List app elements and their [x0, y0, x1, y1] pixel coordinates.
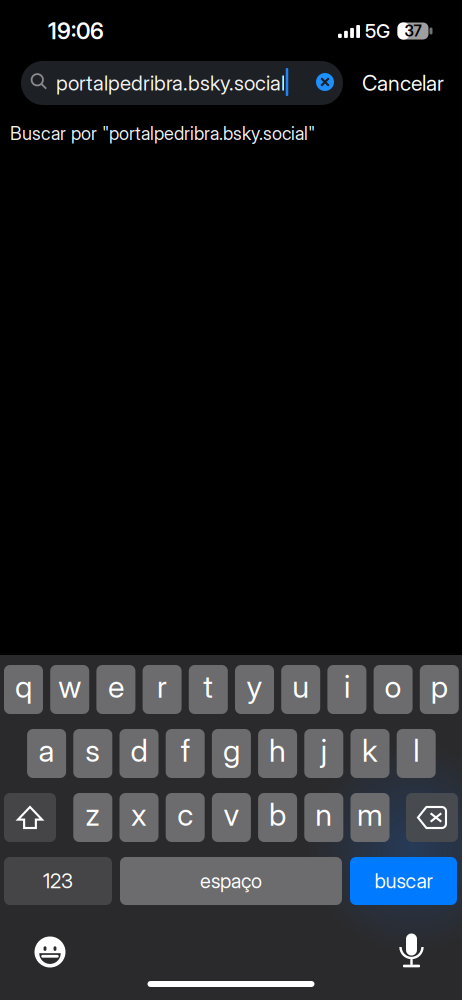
- staticText: d: [130, 732, 147, 769]
- staticText: v: [223, 796, 239, 833]
- staticText: Buscar por "portalpedribra.bsky.social": [10, 122, 315, 144]
- button[interactable]: q: [4, 665, 43, 714]
- staticText: i: [344, 668, 350, 705]
- button[interactable]: w: [50, 665, 89, 714]
- staticText: 37: [404, 22, 421, 40]
- button[interactable]: 123: [4, 857, 112, 905]
- button[interactable]: Clear text: [308, 65, 342, 99]
- button[interactable]: u: [281, 665, 320, 714]
- button[interactable]: k: [350, 729, 389, 778]
- staticText: 19:06: [48, 17, 104, 45]
- button[interactable]: Dictation: [389, 929, 433, 973]
- button[interactable]: Shift: [4, 793, 56, 842]
- button[interactable]: s: [73, 729, 112, 778]
- staticText: x: [131, 796, 147, 833]
- button[interactable]: a: [27, 729, 66, 778]
- staticText: Cancelar: [362, 70, 444, 96]
- button[interactable]: r: [143, 665, 182, 714]
- button[interactable]: b: [258, 793, 297, 842]
- staticText: z: [85, 796, 100, 833]
- staticText: u: [292, 668, 309, 705]
- staticText: portalpedribra.bsky.social: [56, 70, 285, 95]
- button[interactable]: d: [119, 729, 158, 778]
- button[interactable]: Buscar por "portalpedribra.bsky.social": [0, 115, 462, 151]
- button[interactable]: e: [96, 665, 135, 714]
- staticText: o: [385, 668, 402, 705]
- button[interactable]: Cancelar: [351, 61, 455, 105]
- staticText: a: [39, 732, 55, 769]
- staticText: buscar: [374, 869, 432, 893]
- button[interactable]: i: [327, 665, 366, 714]
- staticText: m: [357, 796, 383, 833]
- staticText: b: [269, 796, 286, 833]
- staticText: e: [108, 668, 124, 705]
- staticText: l: [413, 732, 419, 769]
- button[interactable]: y: [235, 665, 274, 714]
- staticText: f: [181, 732, 190, 769]
- staticText: j: [321, 732, 327, 769]
- staticText: c: [177, 796, 193, 833]
- button[interactable]: h: [258, 729, 297, 778]
- staticText: p: [431, 668, 448, 705]
- button[interactable]: l: [397, 729, 436, 778]
- staticText: k: [362, 732, 378, 769]
- button[interactable]: Delete: [406, 793, 458, 842]
- button[interactable]: n: [304, 793, 343, 842]
- staticText: y: [246, 668, 262, 705]
- button[interactable]: t: [189, 665, 228, 714]
- staticText: q: [15, 668, 32, 705]
- button[interactable]: Emoji keyboard: [28, 930, 72, 974]
- staticText: 5G: [365, 19, 390, 43]
- button[interactable]: c: [166, 793, 205, 842]
- staticText: w: [58, 668, 81, 705]
- button[interactable]: g: [212, 729, 251, 778]
- button[interactable]: m: [350, 793, 389, 842]
- button[interactable]: x: [119, 793, 158, 842]
- staticText: r: [157, 668, 167, 705]
- staticText: n: [315, 796, 332, 833]
- button[interactable]: p: [420, 665, 459, 714]
- staticText: s: [85, 732, 100, 769]
- button[interactable]: espaço: [120, 857, 342, 905]
- staticText: h: [269, 732, 286, 769]
- staticText: 123: [43, 869, 73, 893]
- button[interactable]: v: [212, 793, 251, 842]
- staticText: t: [203, 668, 213, 705]
- button[interactable]: z: [73, 793, 112, 842]
- staticText: espaço: [200, 869, 262, 893]
- button[interactable]: j: [304, 729, 343, 778]
- button[interactable]: o: [374, 665, 413, 714]
- staticText: g: [223, 732, 240, 769]
- button[interactable]: f: [166, 729, 205, 778]
- button[interactable]: buscar: [350, 857, 457, 905]
